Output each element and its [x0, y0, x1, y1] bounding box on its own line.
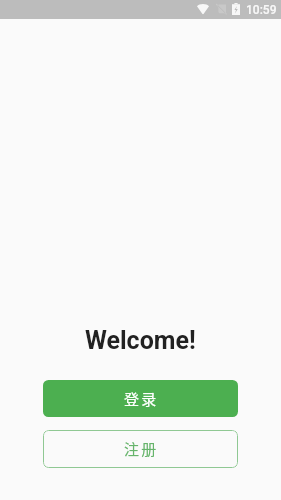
staticText: Welcome!: [85, 326, 196, 355]
button[interactable]: 注册: [43, 430, 238, 468]
other: No SIM card: [216, 4, 226, 14]
other: Battery charging: [232, 3, 240, 15]
other: Wi-Fi signal: [197, 4, 209, 14]
staticText: 登录: [124, 388, 159, 410]
button[interactable]: 登录: [43, 380, 238, 417]
staticText: 10:59: [246, 3, 277, 17]
staticText: 注册: [124, 438, 159, 460]
